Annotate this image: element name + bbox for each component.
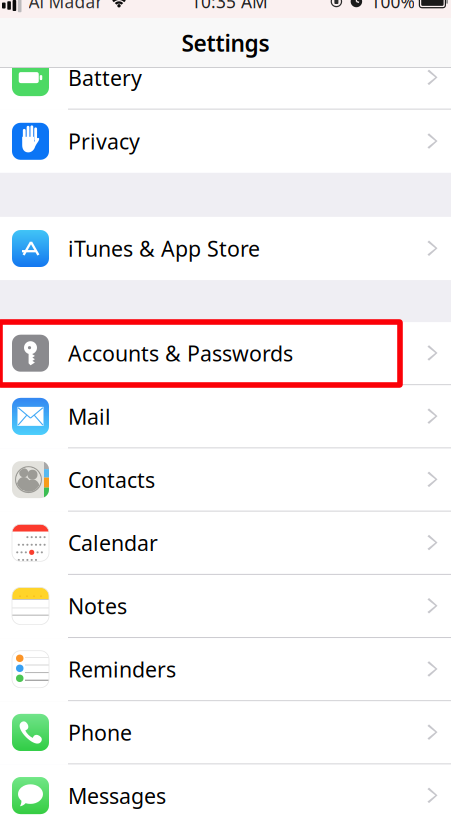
staticText: Mail [68, 402, 111, 430]
staticText: Messages [68, 781, 166, 810]
staticText: 10:35 AM [191, 0, 268, 13]
staticText: Contacts [68, 465, 155, 494]
staticText: iTunes & App Store [68, 234, 260, 263]
staticText: Phone [68, 718, 132, 746]
button[interactable]: Privacy [0, 110, 451, 173]
staticText: Accounts & Passwords [68, 339, 293, 367]
button[interactable]: Mail [0, 385, 451, 448]
button[interactable]: Calendar [0, 512, 451, 575]
staticText: Settings [181, 28, 269, 58]
staticText: Al Madar [28, 0, 102, 13]
staticText: Battery [68, 63, 142, 92]
button[interactable]: iTunes & App Store [0, 217, 451, 280]
button[interactable]: Reminders [0, 638, 451, 701]
staticText: 100% [370, 0, 414, 13]
staticText: Privacy [68, 127, 140, 155]
button[interactable]: Messages [0, 764, 451, 816]
button[interactable]: Notes [0, 575, 451, 638]
staticText: Notes [68, 592, 127, 620]
button[interactable]: Accounts & Passwords [0, 322, 451, 385]
button[interactable]: Battery [0, 46, 451, 110]
button[interactable]: Phone [0, 701, 451, 764]
staticText: Calendar [68, 529, 158, 557]
button[interactable]: Contacts [0, 448, 451, 512]
staticText: Reminders [68, 655, 176, 683]
